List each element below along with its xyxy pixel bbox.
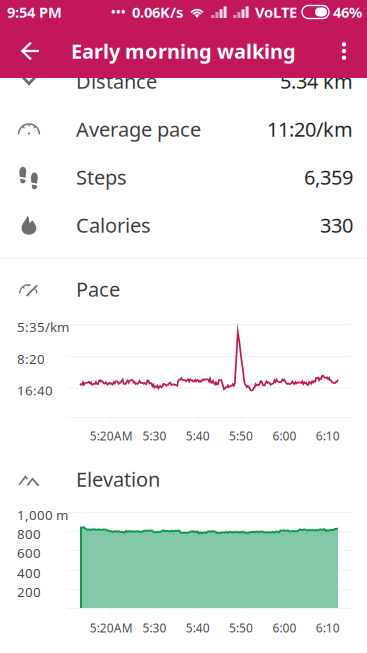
staticText: 330	[320, 212, 353, 238]
button[interactable]: Distance	[0, 57, 367, 105]
staticText: 5:50	[229, 620, 253, 636]
staticText: 46%	[333, 2, 362, 22]
staticText: 5.34 km	[280, 68, 353, 94]
button[interactable]: More options	[324, 24, 364, 78]
staticText: 5:50	[229, 428, 253, 444]
staticText: 5:20AM	[90, 620, 133, 636]
staticText: Average pace	[76, 116, 201, 142]
staticText: Early morning walking	[71, 38, 296, 64]
staticText: 16:40	[17, 381, 53, 399]
staticText: VoLTE	[255, 2, 297, 22]
staticText: 600	[17, 544, 41, 562]
button[interactable]: Calories	[0, 201, 367, 249]
staticText: 5:20AM	[90, 428, 133, 444]
staticText: 9:54 PM	[7, 2, 62, 22]
staticText: 800	[17, 525, 41, 543]
staticText: 6:10	[316, 620, 340, 636]
staticText: 5:40	[186, 428, 210, 444]
staticText: 0.06K/s	[132, 2, 183, 22]
staticText: 5:30	[142, 428, 166, 444]
staticText: •••	[111, 4, 126, 20]
staticText: Distance	[76, 68, 157, 94]
staticText: 6:00	[272, 620, 296, 636]
staticText: 400	[17, 564, 41, 582]
button[interactable]: Average pace	[0, 105, 367, 153]
staticText: 11:20/km	[267, 116, 353, 142]
button[interactable]: Back	[6, 24, 54, 78]
staticText: 8:20	[17, 350, 45, 368]
staticText: 6,359	[304, 164, 353, 190]
staticText: Pace	[76, 276, 120, 302]
staticText: 1,000 m	[17, 506, 68, 524]
staticText: 6:00	[272, 428, 296, 444]
staticText: 5:40	[186, 620, 210, 636]
staticText: 5:35/km	[17, 318, 69, 336]
staticText: 200	[17, 583, 41, 601]
staticText: Calories	[76, 212, 151, 238]
button[interactable]: Steps	[0, 153, 367, 201]
staticText: 6:10	[316, 428, 340, 444]
staticText: Steps	[76, 164, 127, 190]
staticText: 5:30	[142, 620, 166, 636]
staticText: Elevation	[76, 466, 160, 492]
